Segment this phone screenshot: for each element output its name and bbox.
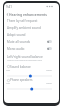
- staticText: Adapt sound: [7, 33, 26, 37]
- button[interactable]: [4, 65, 59, 70]
- button[interactable]: [4, 16, 59, 23]
- staticText: Left: [6, 82, 11, 85]
- staticText: Left: [6, 69, 11, 72]
- staticText: Sound balance: [10, 65, 31, 69]
- staticText: Phone speakers: [10, 78, 33, 82]
- staticText: 9:41: [6, 5, 12, 9]
- button[interactable]: Toggle: [46, 39, 52, 43]
- button[interactable]: [4, 78, 59, 83]
- button[interactable]: [4, 30, 59, 37]
- staticText: Adjust the balance between ears: [7, 59, 43, 62]
- staticText: Right: [45, 69, 52, 72]
- staticText: Mono audio: [7, 47, 25, 51]
- staticText: Left/right sound balance: [7, 55, 43, 59]
- button[interactable]: [4, 37, 59, 44]
- staticText: There by self request: [7, 19, 38, 23]
- button[interactable]: [4, 44, 59, 51]
- button[interactable]: Back: [4, 11, 10, 17]
- button[interactable]: [4, 23, 59, 30]
- staticText: Mute all sounds: [7, 40, 31, 44]
- button[interactable]: Toggle: [46, 46, 52, 50]
- staticText: Amplify ambient sound: [7, 26, 41, 30]
- staticText: Hearing enhancements: [9, 12, 47, 17]
- staticText: Right: [45, 82, 52, 85]
